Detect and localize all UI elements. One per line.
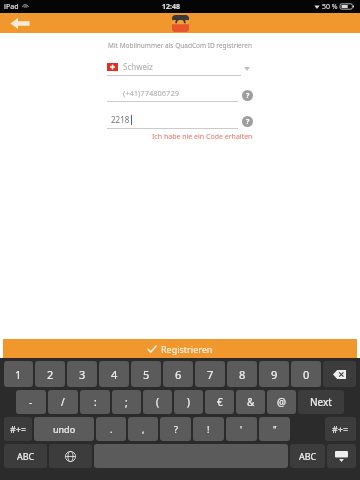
staticText: Next — [310, 395, 332, 409]
button[interactable]: 3 — [67, 361, 97, 387]
staticText: . — [110, 423, 113, 435]
button[interactable]: undo — [34, 417, 94, 441]
staticText: ? — [246, 91, 250, 101]
button[interactable]: Ich habe nie ein Code erhalten — [152, 132, 253, 142]
button[interactable]: " — [259, 417, 290, 441]
button[interactable]: ) — [174, 390, 203, 414]
button[interactable]: App icon — [172, 15, 189, 32]
staticText: - — [29, 395, 33, 409]
staticText: € — [217, 395, 223, 409]
staticText: 8 — [239, 367, 246, 382]
button[interactable]: ( — [143, 390, 172, 414]
button[interactable]: (+41)774806729 — [107, 88, 238, 102]
staticText: ( — [156, 395, 159, 409]
button[interactable]: 7 — [195, 361, 225, 387]
staticText: ? — [246, 117, 250, 127]
button[interactable]: Help phone number — [242, 90, 253, 101]
staticText: 1 — [15, 367, 22, 382]
staticText: ABC — [17, 450, 35, 462]
button[interactable]: . — [96, 417, 126, 441]
staticText: (+41)774806729 — [123, 88, 179, 98]
staticText: iPad — [4, 2, 19, 12]
button[interactable]: Next — [298, 390, 344, 414]
staticText: 7 — [207, 367, 214, 382]
button[interactable]: Help code — [242, 116, 253, 127]
staticText: : — [94, 395, 97, 409]
button[interactable]: ABC — [290, 444, 325, 468]
staticText: Mit Mobilnummer als QuadCom ID registrie… — [108, 41, 252, 50]
staticText: 0 — [303, 367, 310, 382]
staticText: 2218 — [111, 114, 130, 125]
button[interactable]: #+= — [4, 417, 32, 441]
staticText: undo — [53, 423, 76, 435]
button[interactable]: & — [236, 390, 265, 414]
staticText: ! — [207, 423, 210, 435]
button[interactable]: ABC — [4, 444, 47, 468]
button[interactable]: 0 — [291, 361, 321, 387]
button[interactable]: Schweiz — [107, 61, 253, 76]
staticText: ; — [125, 395, 128, 409]
button[interactable]: Registrieren — [3, 339, 357, 358]
staticText: & — [247, 395, 255, 409]
button[interactable]: : — [80, 390, 110, 414]
staticText: / — [61, 395, 65, 409]
staticText: 12:48 — [162, 2, 180, 12]
button[interactable]: , — [128, 417, 158, 441]
button[interactable]: - — [16, 390, 46, 414]
staticText: ) — [187, 395, 190, 409]
button[interactable]: Back — [6, 14, 34, 32]
button[interactable]: ; — [112, 390, 141, 414]
button[interactable]: 2 — [35, 361, 65, 387]
button[interactable]: Hide keyboard — [327, 444, 356, 468]
button[interactable]: 4 — [99, 361, 129, 387]
button[interactable]: 1 — [4, 361, 33, 387]
staticText: , — [142, 423, 145, 435]
staticText: 4 — [111, 367, 118, 382]
staticText: 9 — [271, 367, 278, 382]
staticText: #+= — [332, 423, 349, 435]
button[interactable]: € — [205, 390, 234, 414]
staticText: ? — [174, 423, 178, 435]
button[interactable]: Switch language — [49, 444, 92, 468]
staticText: @ — [277, 395, 286, 409]
staticText: 5 — [143, 367, 150, 382]
staticText: 3 — [79, 367, 86, 382]
button[interactable]: 8 — [227, 361, 257, 387]
button[interactable]: ' — [226, 417, 257, 441]
staticText: #+= — [10, 423, 27, 435]
button[interactable]: ? — [160, 417, 191, 441]
button[interactable]: 5 — [131, 361, 161, 387]
staticText: Schweiz — [123, 61, 153, 72]
staticText: ABC — [299, 450, 317, 462]
button[interactable]: 6 — [163, 361, 193, 387]
staticText: 2 — [47, 367, 54, 382]
staticText: " — [273, 423, 277, 435]
staticText: 50 % — [322, 2, 338, 12]
staticText: ' — [240, 423, 243, 435]
button[interactable]: 9 — [259, 361, 289, 387]
staticText: Ich habe nie ein Code erhalten — [152, 132, 253, 142]
button[interactable]: @ — [267, 390, 296, 414]
staticText: Registrieren — [161, 343, 213, 355]
button[interactable]: ! — [193, 417, 224, 441]
button[interactable]: Backspace — [323, 361, 356, 387]
button[interactable]: #+= — [325, 417, 356, 441]
staticText: 6 — [175, 367, 182, 382]
button[interactable]: / — [48, 390, 78, 414]
